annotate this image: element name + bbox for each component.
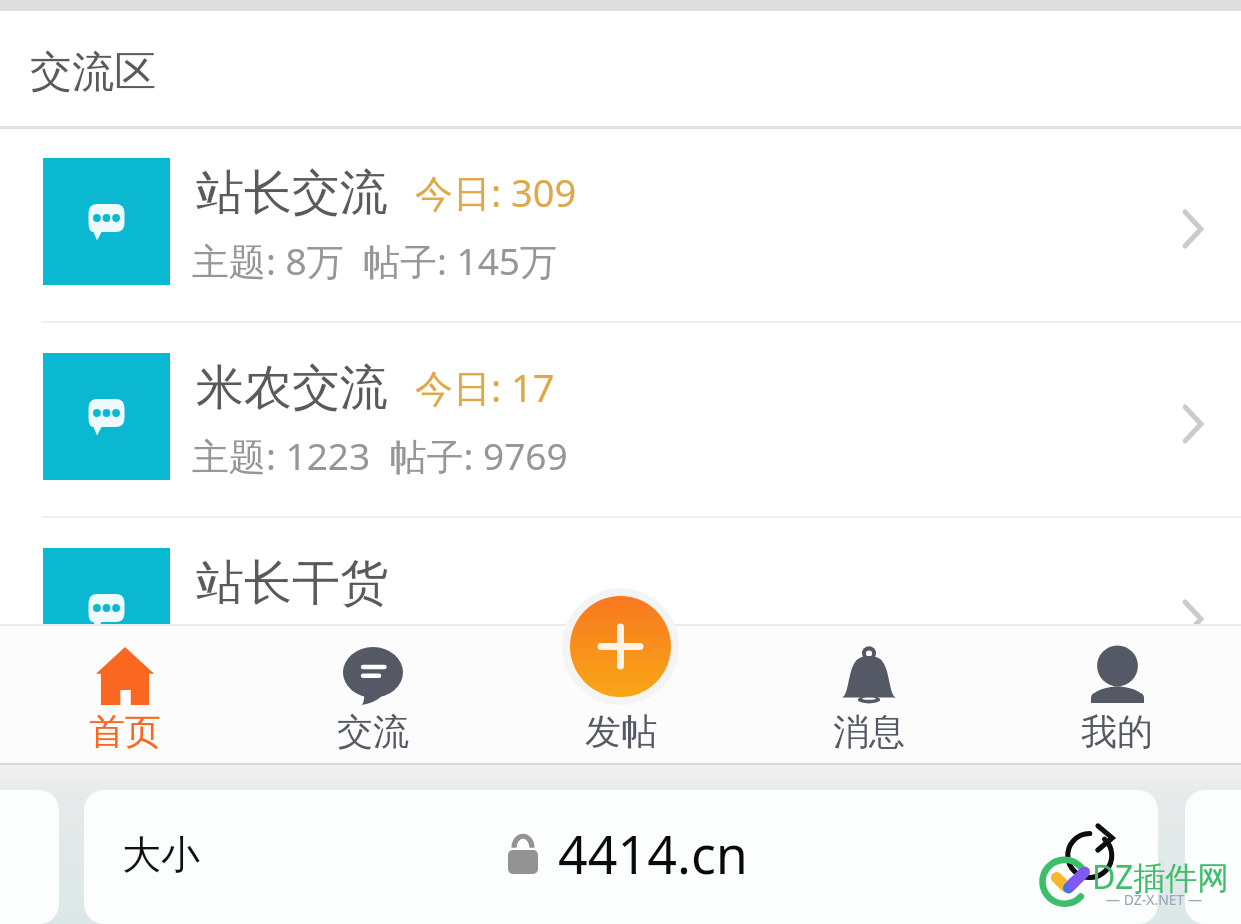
button[interactable]: 大小 xyxy=(103,812,219,896)
button[interactable]: 大小 xyxy=(84,790,1158,924)
staticText: 今日: 309 xyxy=(415,166,577,218)
staticText: — DZ-X.NET — xyxy=(1106,890,1203,909)
staticText: 交流 xyxy=(337,709,409,754)
staticText: 主题: 8万 帖子: 145万 xyxy=(192,235,557,286)
staticText: 站长交流 xyxy=(196,163,388,223)
staticText: 大小 xyxy=(122,830,200,879)
staticText: 4414.cn xyxy=(558,818,749,889)
staticText: 交流区 xyxy=(30,46,156,99)
button[interactable]: Next tab xyxy=(1185,790,1241,924)
button[interactable]: 发帖 xyxy=(497,624,745,765)
staticText: 主题: 9000 帖子: 2万 xyxy=(192,625,542,676)
button[interactable]: 我的 xyxy=(993,624,1241,765)
button[interactable]: 交流 xyxy=(249,624,497,765)
button[interactable]: 消息 xyxy=(745,624,993,765)
button[interactable]: 站长干货 xyxy=(0,518,1241,713)
staticText: 我的 xyxy=(1081,709,1153,754)
button[interactable]: 站长交流 xyxy=(0,128,1241,323)
staticText: 主题: 1223 帖子: 9769 xyxy=(192,430,568,481)
button[interactable]: Reload xyxy=(1069,827,1131,889)
staticText: DZ插件网 xyxy=(1092,855,1230,899)
staticText: 发帖 xyxy=(585,709,657,754)
button[interactable]: 首页 xyxy=(0,624,249,765)
staticText: 首页 xyxy=(89,709,161,754)
button[interactable]: 米农交流 xyxy=(0,323,1241,518)
staticText: 米农交流 xyxy=(196,358,388,418)
button[interactable]: Previous tab xyxy=(0,790,59,924)
button[interactable]: 发帖 xyxy=(562,588,679,705)
staticText: 站长干货 xyxy=(196,553,388,613)
staticText: 今日: 17 xyxy=(415,361,555,413)
staticText: 消息 xyxy=(833,709,905,754)
